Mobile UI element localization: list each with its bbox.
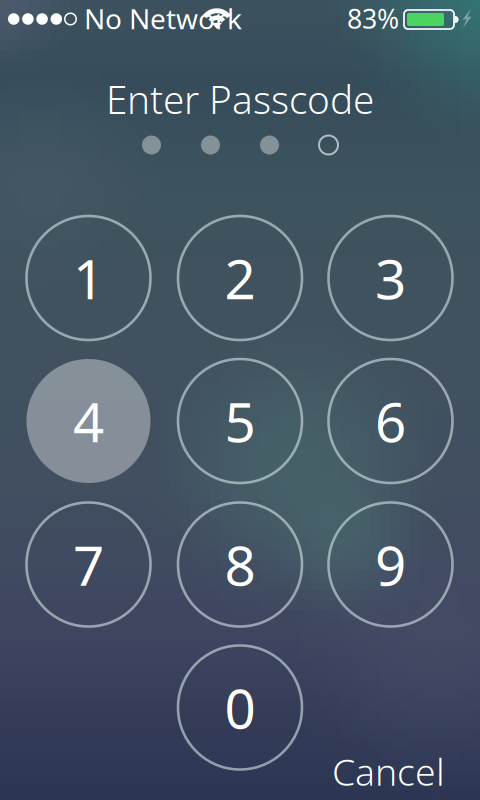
staticText: 0 xyxy=(224,671,255,744)
button[interactable]: 1 xyxy=(26,216,150,340)
button[interactable]: 5 xyxy=(178,359,302,483)
staticText: Cancel xyxy=(332,746,445,796)
button[interactable]: 2 xyxy=(178,216,302,340)
button[interactable]: 3 xyxy=(328,216,452,340)
staticText: Enter Passcode xyxy=(106,73,374,125)
staticText: 4 xyxy=(73,385,104,457)
staticText: 6 xyxy=(375,385,406,457)
staticText: 1 xyxy=(73,242,104,314)
button[interactable]: Cancel xyxy=(332,746,445,796)
staticText: 9 xyxy=(375,528,406,601)
button[interactable]: 9 xyxy=(328,502,452,626)
staticText: 7 xyxy=(73,528,104,601)
staticText: No Network xyxy=(84,0,242,37)
button[interactable]: 0 xyxy=(178,645,302,769)
button[interactable]: 4 xyxy=(26,359,150,483)
button[interactable]: 6 xyxy=(328,359,452,483)
staticText: 5 xyxy=(224,385,255,457)
staticText: 8 xyxy=(224,528,255,601)
staticText: 3 xyxy=(375,242,406,314)
staticText: 2 xyxy=(224,242,255,314)
button[interactable]: 8 xyxy=(178,502,302,626)
staticText: 83% xyxy=(347,1,399,36)
button[interactable]: 7 xyxy=(26,502,150,626)
